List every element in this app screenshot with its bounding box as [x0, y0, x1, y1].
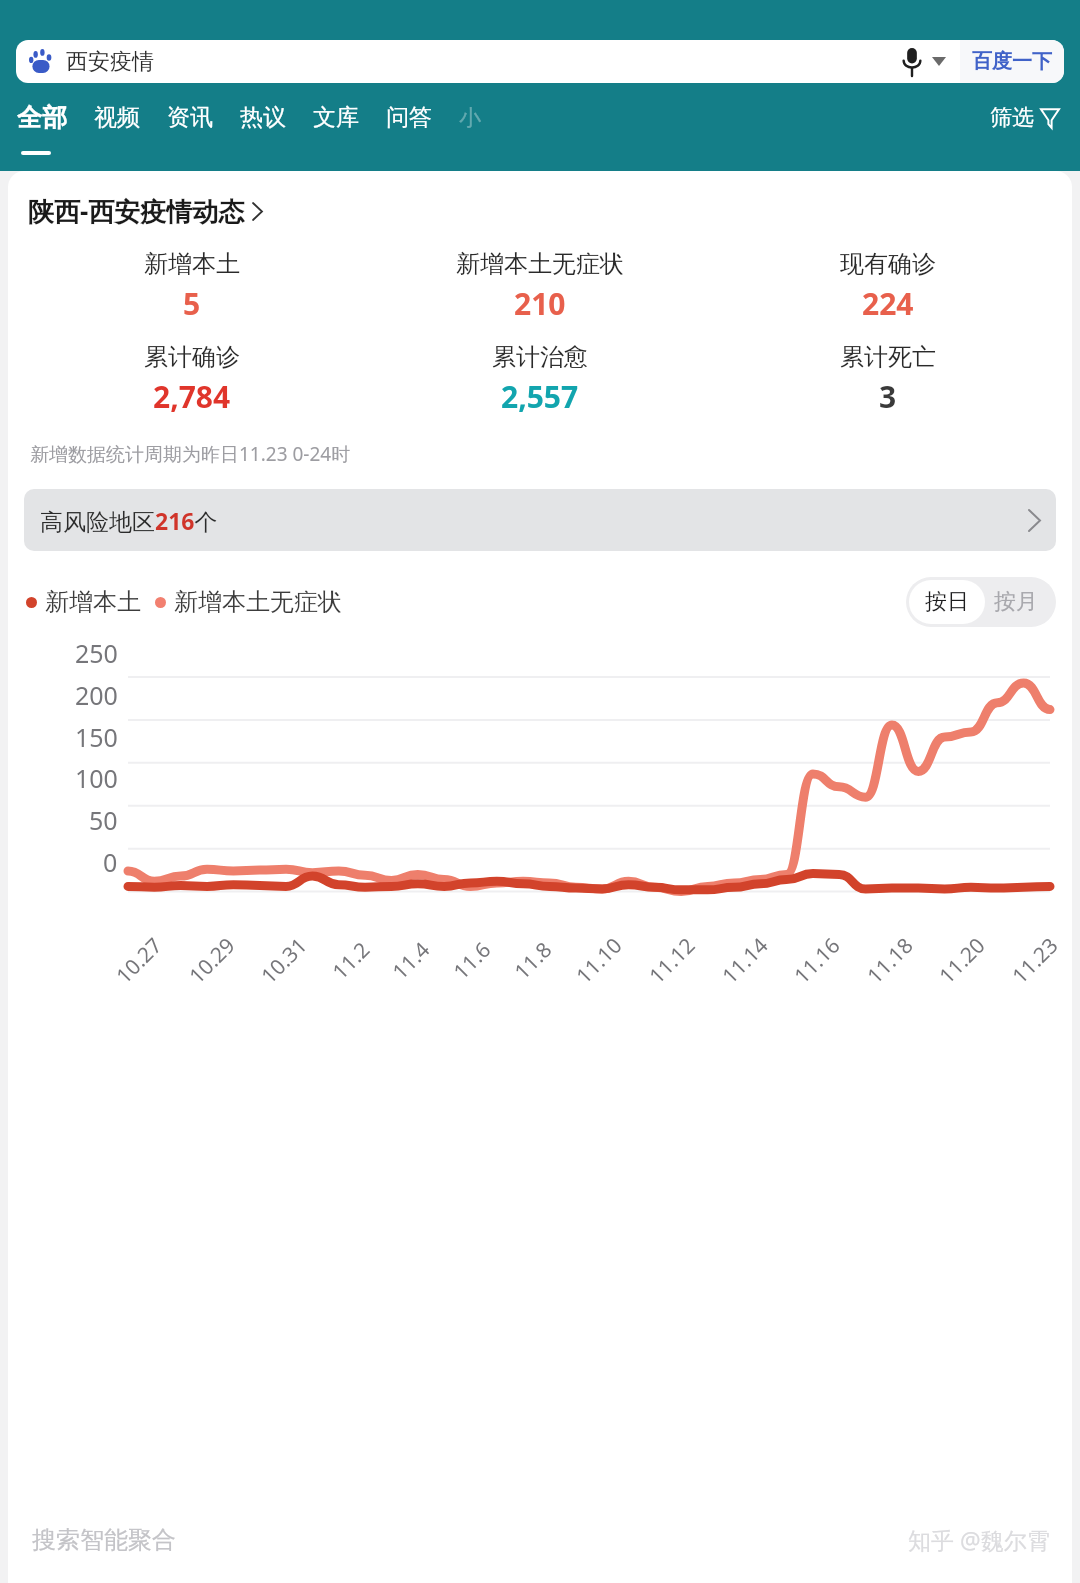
staticText: 新增数据统计周期为昨日11.23 0-24时	[30, 441, 351, 467]
button[interactable]: 问答	[386, 103, 432, 132]
staticText: 10.27	[110, 931, 168, 990]
button[interactable]: 陕西-西安疫情动态	[8, 193, 282, 229]
staticText: 新增本土无症状	[174, 587, 342, 617]
staticText: 全部	[17, 102, 67, 133]
staticText: 按日	[925, 588, 969, 616]
staticText: 资讯	[167, 103, 213, 132]
staticText: 0	[103, 845, 118, 879]
staticText: 10.29	[183, 931, 241, 990]
button[interactable]: 西安疫情	[16, 40, 960, 83]
staticText: 文库	[313, 103, 359, 132]
staticText: 150	[75, 720, 118, 754]
staticText: 按月	[994, 588, 1038, 616]
staticText: 250	[75, 636, 118, 670]
button[interactable]: 筛选	[982, 104, 1068, 132]
staticText: 累计确诊	[144, 342, 240, 372]
button[interactable]: 按日	[909, 580, 985, 624]
staticText: 累计治愈	[492, 342, 588, 372]
staticText: 100	[75, 761, 118, 795]
button[interactable]: 按月	[988, 580, 1056, 624]
staticText: 视频	[94, 103, 140, 132]
staticText: 2,557	[501, 376, 579, 417]
staticText: 西安疫情	[66, 48, 154, 76]
button[interactable]: 热议	[240, 103, 286, 132]
staticText: 热议	[240, 103, 286, 132]
button[interactable]: 资讯	[167, 103, 213, 132]
staticText: 11.4	[386, 935, 436, 986]
button[interactable]: 百度一下	[960, 40, 1064, 83]
staticText: 11.23	[1006, 931, 1064, 990]
staticText: 50	[89, 803, 118, 837]
staticText: 高风险地区216个	[40, 505, 218, 536]
staticText: 11.18	[861, 931, 919, 990]
button[interactable]: 高风险地区216个	[24, 489, 1056, 551]
staticText: 3	[879, 376, 897, 417]
staticText: 现有确诊	[840, 249, 936, 279]
button[interactable]: 文库	[313, 103, 359, 132]
button[interactable]: Voice search	[901, 48, 923, 76]
staticText: 2,784	[153, 376, 231, 417]
staticText: 陕西-西安疫情动态	[28, 193, 245, 229]
staticText: 11.14	[716, 931, 774, 990]
staticText: 新增本土	[144, 249, 240, 279]
button[interactable]: 视频	[94, 103, 140, 132]
staticText: 11.2	[326, 935, 376, 986]
staticText: 小	[459, 104, 481, 132]
staticText: 11.10	[570, 931, 628, 990]
staticText: 5	[183, 283, 201, 324]
staticText: 210	[514, 283, 566, 324]
staticText: 搜索智能聚合	[32, 1525, 176, 1555]
staticText: 新增本土无症状	[456, 249, 624, 279]
staticText: 问答	[386, 103, 432, 132]
staticText: 224	[862, 283, 914, 324]
staticText: 知乎 @魏尔霄	[908, 1524, 1050, 1555]
staticText: 11.20	[933, 931, 991, 990]
staticText: 11.12	[643, 931, 701, 990]
staticText: 筛选	[990, 104, 1034, 132]
staticText: 200	[75, 678, 118, 712]
staticText: 累计死亡	[840, 342, 936, 372]
staticText: 10.31	[255, 931, 313, 990]
staticText: 新增本土	[45, 587, 141, 617]
staticText: 11.16	[788, 931, 846, 990]
button[interactable]: 全部	[17, 102, 67, 133]
staticText: 11.8	[508, 935, 558, 986]
staticText: 百度一下	[972, 49, 1052, 74]
staticText: 11.6	[447, 935, 497, 986]
